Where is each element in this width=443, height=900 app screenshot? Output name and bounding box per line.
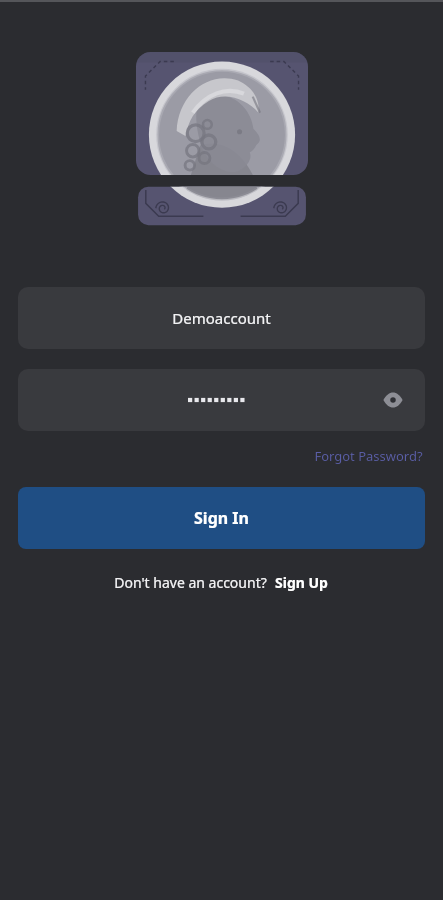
button[interactable]: Forgot Password? (312, 445, 425, 467)
button[interactable]: Show password (18, 369, 425, 431)
button[interactable]: Demoaccount (18, 287, 425, 349)
staticText: Demoaccount (172, 308, 271, 328)
button[interactable]: Sign Up (274, 571, 329, 594)
button[interactable]: Show password (373, 380, 413, 420)
button[interactable]: Sign In (18, 487, 425, 549)
staticText: Don't have an account? (114, 573, 267, 592)
staticText: Sign In (194, 507, 249, 529)
staticText: Forgot Password? (314, 447, 423, 465)
staticText: Sign Up (275, 573, 328, 592)
